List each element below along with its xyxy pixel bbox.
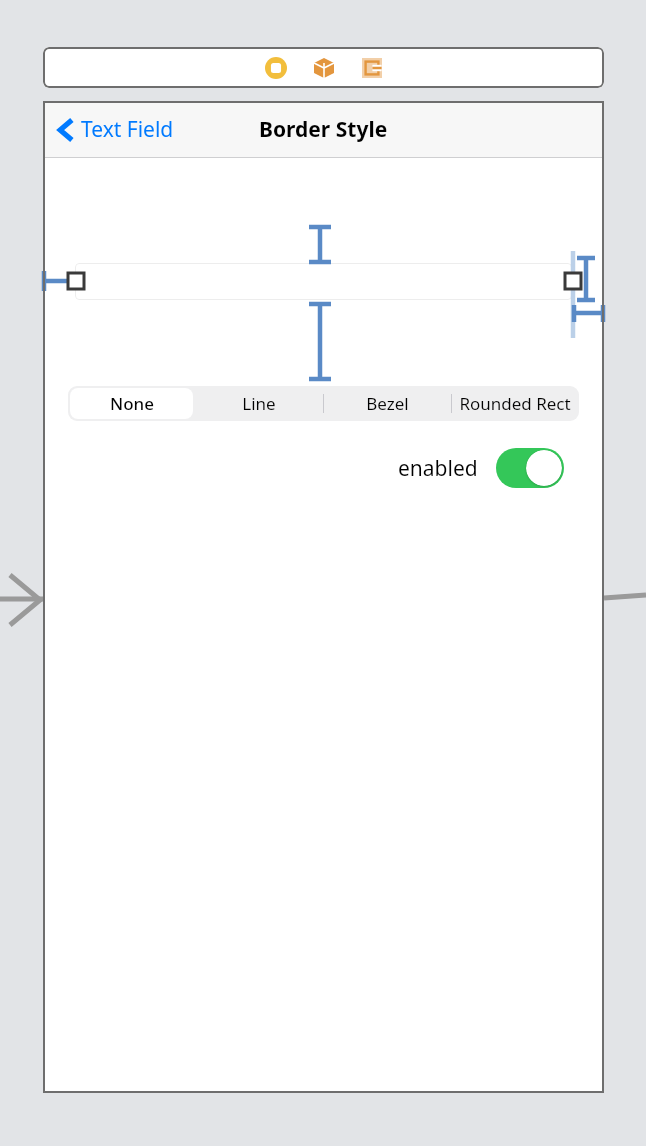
button[interactable]: View hierarchy — [309, 53, 339, 83]
staticText: Rounded Rect — [459, 392, 571, 415]
staticText: Text Field — [81, 115, 174, 144]
staticText: Bezel — [366, 392, 409, 415]
button[interactable]: None — [68, 386, 195, 421]
button[interactable]: Stop — [261, 53, 291, 83]
button[interactable]: enabled — [398, 448, 564, 488]
staticText: Line — [242, 392, 276, 415]
button[interactable]: Rounded Rect — [451, 386, 579, 421]
other: enabled toggle, on — [496, 448, 564, 488]
button[interactable]: Line — [195, 386, 323, 421]
button[interactable]: Text Field — [59, 115, 174, 144]
staticText: None — [110, 392, 154, 415]
button[interactable]: Export — [357, 53, 387, 83]
staticText: enabled — [398, 454, 478, 483]
button[interactable]: Bezel — [323, 386, 451, 421]
button[interactable]: Text field — [75, 263, 572, 300]
staticText: Border Style — [259, 115, 388, 144]
